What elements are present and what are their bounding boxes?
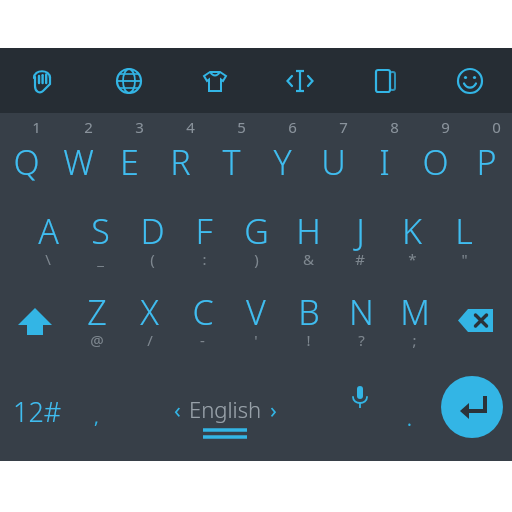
button[interactable]: , xyxy=(74,368,118,454)
staticText: ‹ xyxy=(174,394,181,424)
staticText: ) xyxy=(254,249,259,269)
staticText: T xyxy=(222,139,241,185)
staticText: 6 xyxy=(288,117,297,137)
staticText: X xyxy=(140,289,159,335)
button[interactable]: B xyxy=(282,283,335,368)
button[interactable]: ‹ xyxy=(118,368,332,454)
staticText: Z xyxy=(87,289,107,335)
button[interactable]: Voice input xyxy=(332,368,387,454)
staticText: A xyxy=(38,208,59,254)
staticText: * xyxy=(408,249,417,269)
staticText: I xyxy=(379,139,390,185)
button[interactable]: G xyxy=(230,198,282,283)
staticText: Q xyxy=(13,139,40,185)
staticText: ( xyxy=(150,249,155,269)
staticText: ; xyxy=(412,330,417,350)
staticText: - xyxy=(200,330,205,350)
staticText: N xyxy=(349,289,374,335)
button[interactable]: 0 xyxy=(461,113,512,198)
staticText: English xyxy=(189,394,262,424)
button[interactable]: K xyxy=(386,198,438,283)
button[interactable]: Enter xyxy=(432,368,512,454)
button[interactable]: Theme xyxy=(172,48,257,113)
staticText: 12# xyxy=(13,393,62,430)
button[interactable]: 12# xyxy=(0,368,74,454)
staticText: , xyxy=(94,405,99,430)
staticText: G xyxy=(244,208,269,254)
button[interactable]: A xyxy=(22,198,74,283)
staticText: R xyxy=(170,139,191,185)
button[interactable]: 3 xyxy=(104,113,155,198)
staticText: & xyxy=(303,249,314,269)
button[interactable]: L xyxy=(438,198,490,283)
staticText: _ xyxy=(97,249,104,269)
staticText: : xyxy=(202,249,207,269)
button[interactable]: C xyxy=(176,283,229,368)
button[interactable]: Backspace xyxy=(441,283,512,368)
staticText: W xyxy=(63,139,94,185)
button[interactable]: D xyxy=(126,198,178,283)
staticText: M xyxy=(400,289,430,335)
staticText: . xyxy=(407,407,412,432)
staticText: ' xyxy=(254,330,258,350)
staticText: 0 xyxy=(492,117,501,137)
button[interactable]: J xyxy=(334,198,386,283)
staticText: @ xyxy=(90,330,104,350)
button[interactable]: 7 xyxy=(308,113,359,198)
staticText: 2 xyxy=(84,117,93,137)
staticText: 1 xyxy=(32,117,41,137)
staticText: V xyxy=(246,289,266,335)
staticText: # xyxy=(355,249,365,269)
button[interactable]: Language xyxy=(86,48,172,113)
staticText: Y xyxy=(273,139,292,185)
button[interactable]: Shift xyxy=(0,283,70,368)
button[interactable]: Dictionary xyxy=(342,48,427,113)
staticText: 4 xyxy=(186,117,195,137)
staticText: ? xyxy=(358,330,365,350)
button[interactable]: 8 xyxy=(359,113,410,198)
staticText: P xyxy=(476,139,497,185)
button[interactable]: 6 xyxy=(257,113,308,198)
button[interactable]: 9 xyxy=(410,113,461,198)
staticText: J xyxy=(356,208,365,254)
staticText: 8 xyxy=(390,117,399,137)
button[interactable]: 4 xyxy=(155,113,206,198)
staticText: 5 xyxy=(237,117,246,137)
staticText: O xyxy=(422,139,449,185)
staticText: " xyxy=(461,249,468,269)
staticText: / xyxy=(147,330,153,350)
button[interactable]: V xyxy=(229,283,282,368)
button[interactable]: Gesture typing xyxy=(0,48,86,113)
staticText: C xyxy=(192,289,214,335)
staticText: › xyxy=(270,394,277,424)
button[interactable]: X xyxy=(123,283,176,368)
staticText: S xyxy=(91,208,110,254)
staticText: D xyxy=(140,208,165,254)
staticText: H xyxy=(296,208,321,254)
staticText: E xyxy=(120,139,139,185)
staticText: \ xyxy=(45,249,51,269)
button[interactable]: H xyxy=(282,198,334,283)
button[interactable]: 5 xyxy=(206,113,257,198)
button[interactable]: M xyxy=(388,283,441,368)
staticText: B xyxy=(298,289,320,335)
staticText: 3 xyxy=(135,117,144,137)
button[interactable]: 1 xyxy=(0,113,52,198)
staticText: K xyxy=(402,208,422,254)
staticText: L xyxy=(455,208,473,254)
button[interactable]: F xyxy=(178,198,230,283)
button[interactable]: N xyxy=(335,283,388,368)
button[interactable]: Cursor control xyxy=(257,48,342,113)
staticText: F xyxy=(195,208,213,254)
button[interactable]: Emoji xyxy=(427,48,512,113)
staticText: U xyxy=(321,139,346,185)
button[interactable]: Z xyxy=(70,283,123,368)
staticText: 9 xyxy=(441,117,450,137)
staticText: 7 xyxy=(339,117,348,137)
button[interactable]: . xyxy=(387,368,432,454)
button[interactable]: 2 xyxy=(52,113,104,198)
button[interactable]: S xyxy=(74,198,126,283)
staticText: ! xyxy=(306,330,311,350)
